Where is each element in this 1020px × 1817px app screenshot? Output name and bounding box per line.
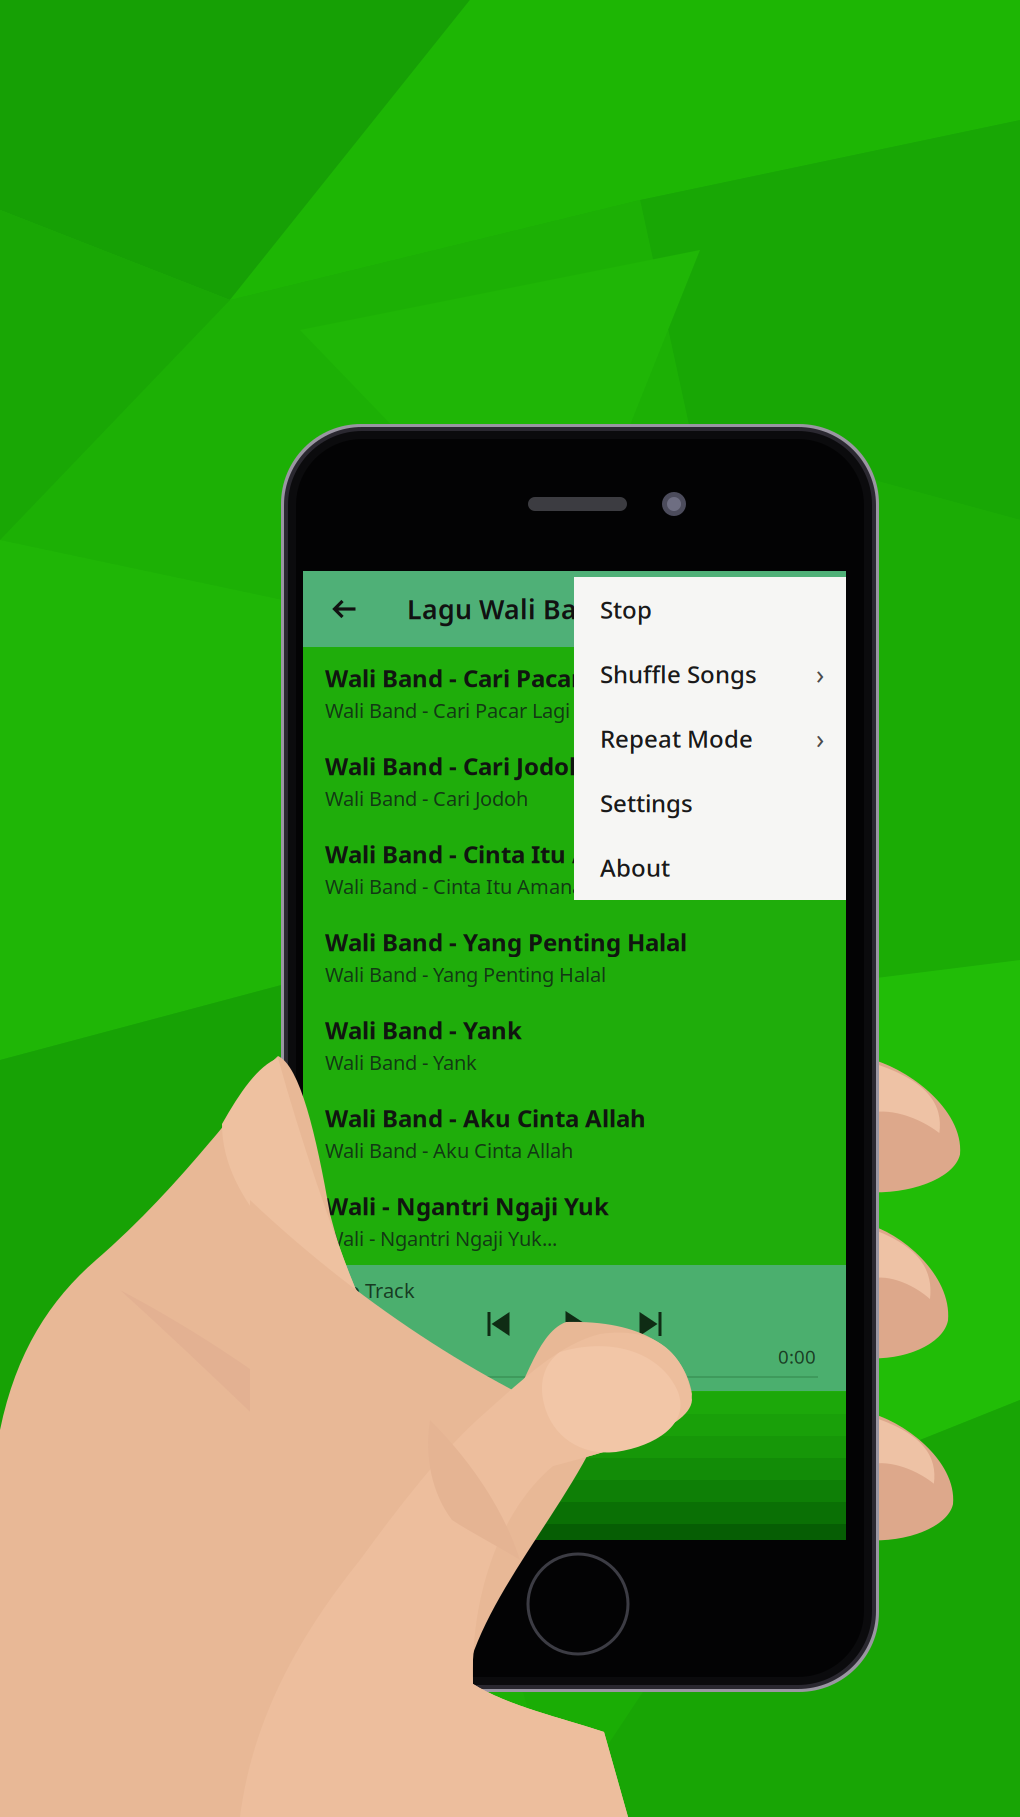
button[interactable]: Stop bbox=[574, 577, 846, 642]
button[interactable]: Wali Band - Aku Cinta Allah bbox=[303, 1101, 846, 1189]
button[interactable]: About bbox=[574, 835, 846, 900]
staticText: 0:00 bbox=[778, 1344, 816, 1369]
staticText: Wali Band - Cari Pacar Lagi bbox=[325, 697, 570, 723]
staticText: Wali Band - Cinta Itu Amanah bbox=[325, 838, 672, 870]
staticText: No Track bbox=[333, 1277, 415, 1304]
button[interactable]: Shuffle Songs bbox=[574, 642, 846, 706]
staticText: Wali Band - Cari Jodoh bbox=[325, 785, 528, 811]
staticText: Wali Band - Cinta Itu Amanah bbox=[325, 873, 595, 899]
staticText: Settings bbox=[600, 787, 693, 819]
staticText: Lagu Wali Band bbox=[407, 591, 611, 627]
staticText: Repeat Mode bbox=[600, 723, 753, 754]
button[interactable]: Wali Band - Yang Penting Halal bbox=[303, 925, 846, 1013]
staticText: Shuffle Songs bbox=[600, 658, 757, 690]
staticText: Wali Band - Yang Penting Halal bbox=[325, 926, 687, 958]
staticText: Stop bbox=[600, 594, 652, 625]
staticText: About bbox=[600, 852, 670, 883]
button[interactable]: Back bbox=[303, 571, 387, 647]
staticText: Wali Band - Yank bbox=[325, 1049, 477, 1075]
staticText: Wali Band - Yang Penting Halal bbox=[325, 961, 606, 987]
button[interactable]: Wali Band - Yank bbox=[303, 1013, 846, 1101]
staticText: Wali - Ngantri Ngaji Yuk... bbox=[325, 1225, 557, 1251]
staticText: Wali Band - Aku Cinta Allah bbox=[325, 1102, 646, 1134]
button[interactable]: Previous bbox=[482, 1309, 514, 1339]
button[interactable]: Wali Band - Cari Pacar Lagi bbox=[303, 661, 846, 749]
staticText: Wali - Ngantri Ngaji Yuk bbox=[325, 1190, 609, 1222]
button[interactable]: Play bbox=[558, 1309, 590, 1339]
button[interactable]: Next bbox=[634, 1309, 666, 1339]
staticText: Wali Band - Cari Pacar Lagi bbox=[325, 662, 637, 694]
staticText: Wali Band - Aku Cinta Allah bbox=[325, 1137, 573, 1163]
button[interactable]: Repeat Mode bbox=[574, 706, 846, 771]
staticText: › bbox=[816, 656, 824, 692]
button[interactable]: Wali Band - Cari Jodoh bbox=[303, 749, 846, 837]
button[interactable]: Wali - Ngantri Ngaji Yuk bbox=[303, 1189, 846, 1277]
staticText: Wali Band - Yank bbox=[325, 1014, 522, 1046]
button[interactable]: Wali Band - Cinta Itu Amanah bbox=[303, 837, 846, 925]
staticText: Wali Band - Cari Jodoh bbox=[325, 750, 585, 782]
staticText: › bbox=[816, 721, 824, 756]
button[interactable]: Settings bbox=[574, 771, 846, 835]
